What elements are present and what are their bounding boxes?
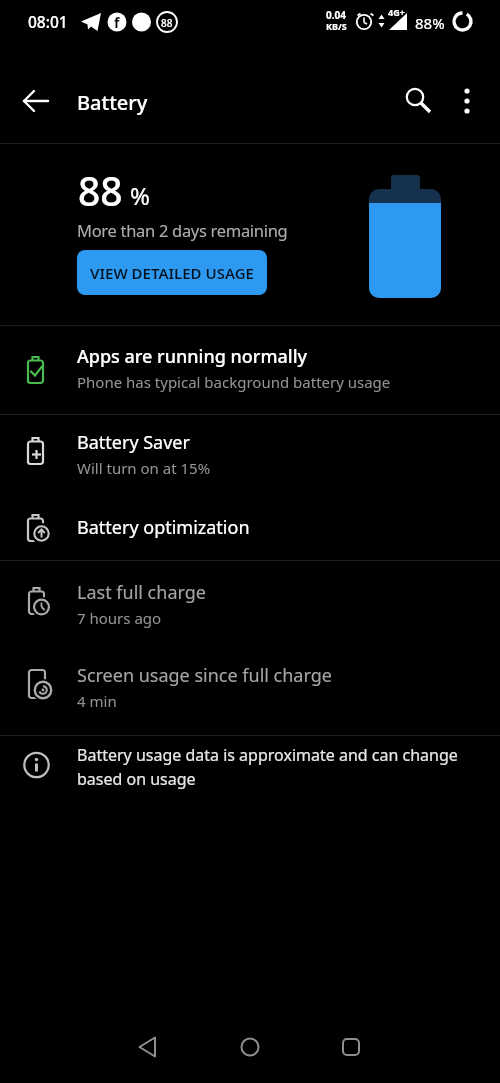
button[interactable]: Screen usage since full charge <box>0 645 500 735</box>
staticText: 4G+ <box>388 6 405 18</box>
button[interactable]: Last full charge <box>0 561 500 645</box>
button[interactable] <box>120 1019 176 1075</box>
staticText: KB/S <box>326 20 347 32</box>
staticText: 88 <box>161 16 173 30</box>
button[interactable]: Apps are running normally <box>0 326 500 414</box>
button[interactable] <box>12 77 60 125</box>
staticText: 4 min <box>77 691 117 711</box>
button[interactable] <box>323 1019 379 1075</box>
staticText: Screen usage since full charge <box>77 663 332 688</box>
staticText: Battery usage data is approximate and ca… <box>77 744 458 790</box>
staticText: % <box>130 179 150 212</box>
staticText: 0.04 <box>326 8 346 22</box>
staticText: f <box>114 13 120 32</box>
staticText: Battery <box>77 89 148 116</box>
button[interactable] <box>443 77 491 125</box>
staticText: Battery optimization <box>77 515 250 540</box>
staticText: 7 hours ago <box>77 608 162 628</box>
button[interactable] <box>394 77 442 125</box>
staticText: Last full charge <box>77 580 206 605</box>
staticText: Apps are running normally <box>77 344 308 369</box>
staticText: 08:01 <box>28 11 68 32</box>
button[interactable]: VIEW DETAILED USAGE <box>77 250 267 295</box>
staticText: VIEW DETAILED USAGE <box>90 263 254 283</box>
button[interactable] <box>222 1019 278 1075</box>
staticText: Battery Saver <box>77 430 190 455</box>
button[interactable]: Battery usage data is approximate and ca… <box>0 736 500 812</box>
staticText: 88% <box>415 13 445 33</box>
staticText: Phone has typical background battery usa… <box>77 372 391 392</box>
staticText: More than 2 days remaining <box>77 219 288 241</box>
button[interactable]: Battery optimization <box>0 490 500 560</box>
staticText: 88 <box>78 164 123 217</box>
button[interactable]: Battery Saver <box>0 415 500 490</box>
staticText: Will turn on at 15% <box>77 458 211 478</box>
